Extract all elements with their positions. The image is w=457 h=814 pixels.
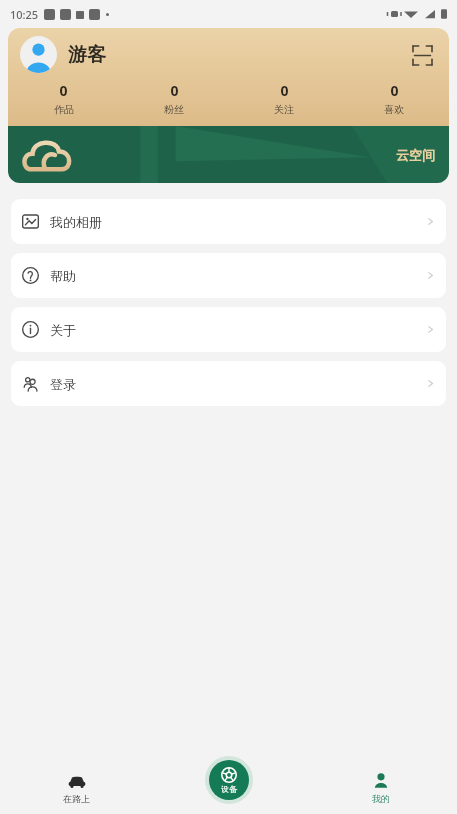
button[interactable]: 我的 (305, 752, 457, 814)
button[interactable]: Scan QR code (407, 40, 437, 70)
button[interactable]: 0 (8, 81, 119, 116)
button[interactable]: 云空间 (8, 126, 449, 183)
staticText: 在路上 (63, 793, 90, 804)
staticText: 云空间 (396, 147, 435, 163)
staticText: 关于 (50, 322, 76, 338)
button[interactable]: 0 (119, 81, 229, 116)
staticText: 游客 (68, 43, 106, 67)
staticText: 0 (390, 81, 399, 100)
button[interactable]: 帮助 (11, 253, 446, 298)
button[interactable]: 0 (229, 81, 339, 116)
button[interactable]: 设备 Device (205, 756, 253, 804)
button[interactable]: 0 (339, 81, 449, 116)
staticText: 10:25 (10, 7, 39, 22)
staticText: 0 (280, 81, 289, 100)
staticText: 0 (170, 81, 179, 100)
staticText: 0 (59, 81, 68, 100)
staticText: 设备 (221, 784, 237, 794)
button[interactable]: 登录 (11, 361, 446, 406)
staticText: 我的相册 (50, 214, 102, 230)
staticText: 我的 (372, 793, 390, 804)
staticText: 登录 (50, 376, 76, 392)
button[interactable]: 关于 (11, 307, 446, 352)
staticText: 喜欢 (384, 103, 404, 116)
staticText: 粉丝 (164, 103, 184, 116)
button[interactable]: 我的相册 (11, 199, 446, 244)
staticText: 作品 (54, 103, 74, 116)
button[interactable]: 在路上 (0, 752, 153, 814)
staticText: 帮助 (50, 268, 76, 284)
staticText: 关注 (274, 103, 294, 116)
